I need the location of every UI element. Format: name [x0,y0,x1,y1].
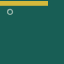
button[interactable]: Title bar [0,0,48,6]
button[interactable]: Start [6,8,14,16]
